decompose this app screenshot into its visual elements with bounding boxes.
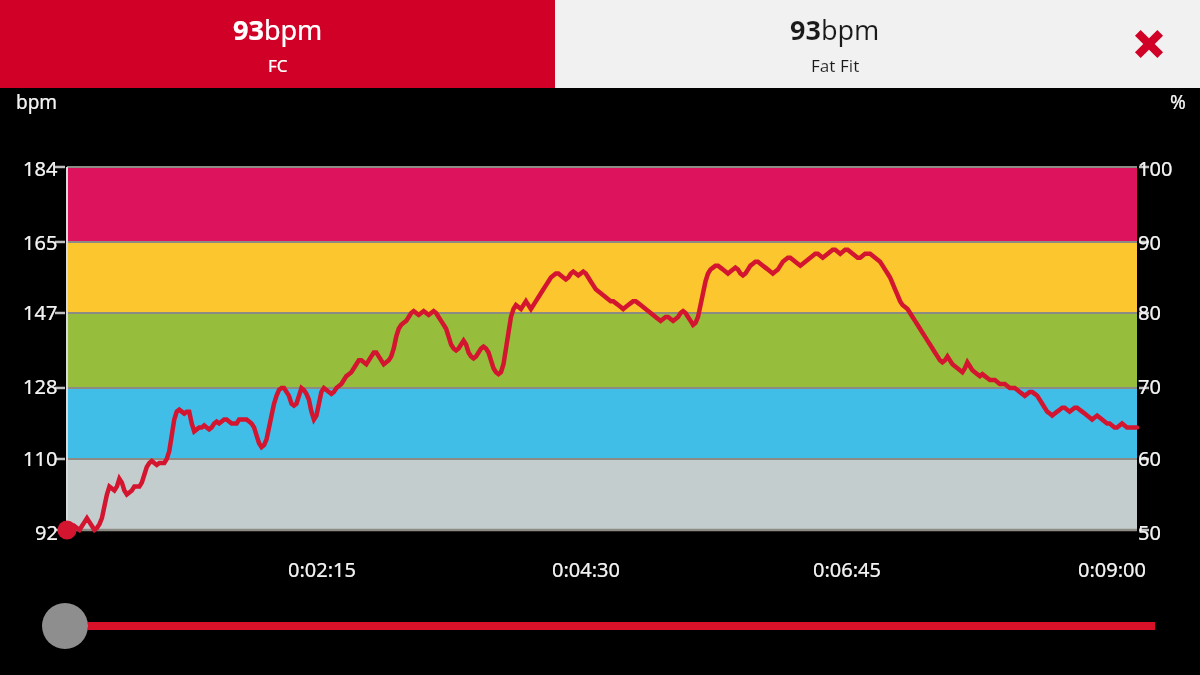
- button[interactable]: 93bpm: [555, 0, 1200, 88]
- staticText: 165: [23, 229, 58, 256]
- button[interactable]: 93bpm: [0, 0, 555, 88]
- staticText: 93bpm: [790, 11, 880, 48]
- staticText: 50: [1138, 519, 1161, 546]
- staticText: 110: [23, 445, 58, 472]
- staticText: 0:02:15: [288, 556, 356, 583]
- staticText: 0:09:00: [1078, 556, 1146, 583]
- staticText: FC: [268, 54, 288, 77]
- button[interactable]: Close: [1112, 0, 1186, 88]
- staticText: 0:04:30: [552, 556, 620, 583]
- staticText: 92: [35, 519, 58, 546]
- staticText: 147: [23, 299, 58, 326]
- staticText: 60: [1138, 445, 1161, 472]
- staticText: 93bpm: [233, 11, 323, 48]
- staticText: bpm: [16, 89, 58, 115]
- button[interactable]: Playback position: [0, 585, 1200, 675]
- staticText: %: [1170, 89, 1186, 115]
- staticText: 184: [23, 155, 58, 182]
- staticText: 128: [23, 373, 58, 400]
- staticText: 90: [1138, 229, 1161, 256]
- staticText: 0:06:45: [813, 556, 881, 583]
- staticText: Fat Fit: [811, 54, 860, 77]
- staticText: 70: [1138, 373, 1161, 400]
- staticText: 100: [1138, 155, 1173, 182]
- staticText: 80: [1138, 299, 1161, 326]
